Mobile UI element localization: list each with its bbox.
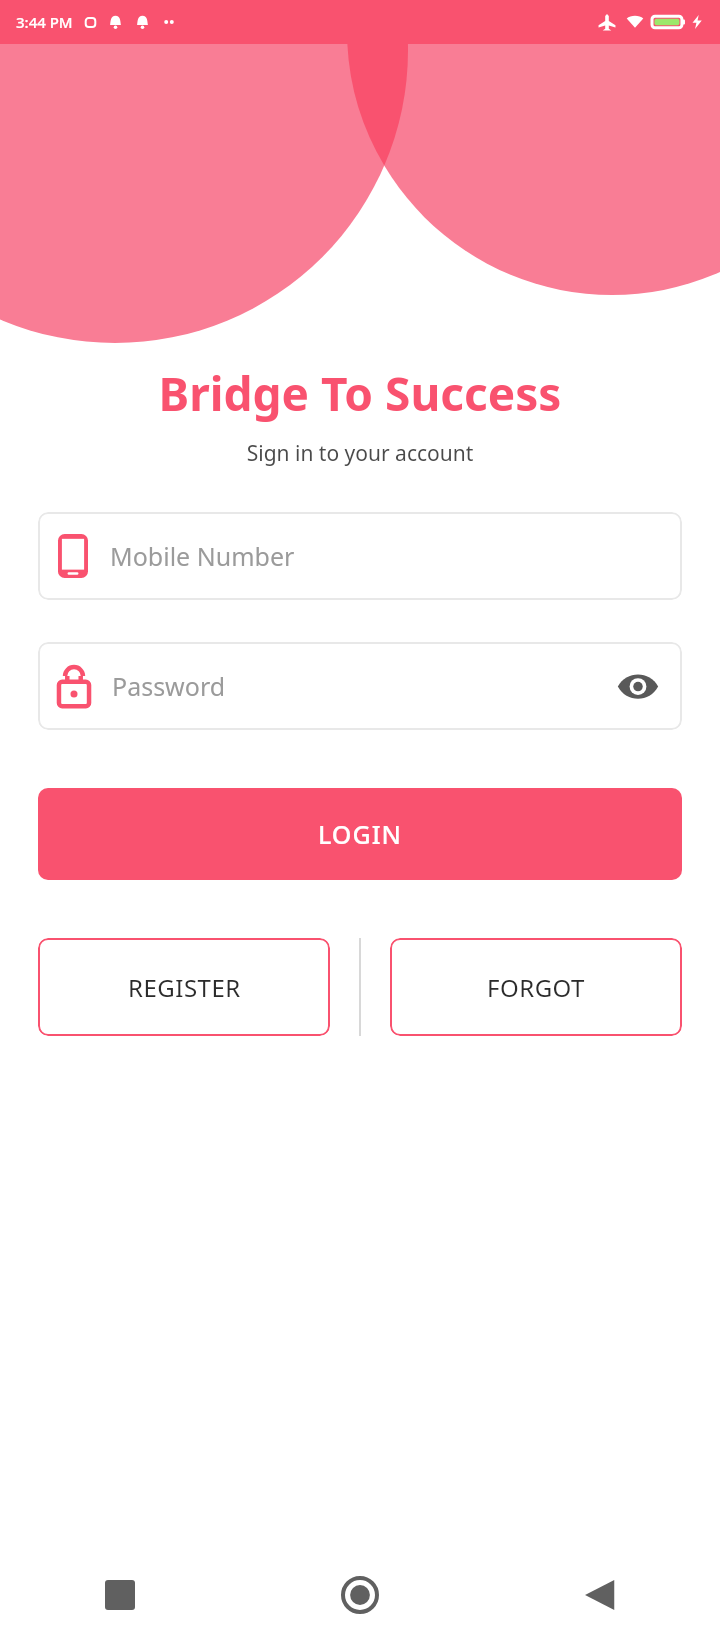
button[interactable]: Password — [38, 642, 682, 730]
button[interactable]: LOGIN — [38, 788, 682, 880]
staticText: REGISTER — [128, 971, 241, 1004]
button[interactable]: REGISTER — [38, 938, 330, 1036]
button[interactable]: FORGOT — [390, 938, 682, 1036]
staticText: Mobile Number — [110, 539, 295, 573]
staticText: Password — [112, 669, 610, 703]
button[interactable]: Mobile Number — [38, 512, 682, 600]
staticText: Sign in to your account — [0, 439, 720, 468]
staticText: LOGIN — [318, 817, 402, 851]
button[interactable]: Back — [480, 1540, 720, 1650]
button[interactable]: Recent apps — [0, 1540, 240, 1650]
staticText: FORGOT — [487, 971, 585, 1004]
staticText: 3:44 PM — [16, 12, 73, 32]
staticText: Bridge To Success — [0, 362, 720, 425]
button[interactable]: Show password — [610, 658, 666, 714]
button[interactable]: Home — [240, 1540, 480, 1650]
